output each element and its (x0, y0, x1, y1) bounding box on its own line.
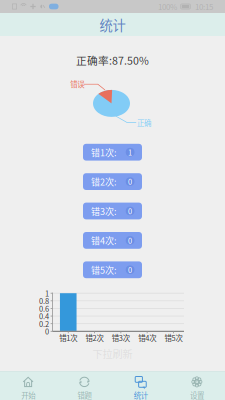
staticText: 错3次 (112, 332, 130, 343)
staticText: 开始 (21, 390, 35, 400)
staticText: 错2次: (91, 175, 117, 188)
staticText: 错1次 (59, 332, 77, 343)
staticText: 错4次 (138, 332, 156, 343)
staticText: 设置 (190, 390, 204, 400)
staticText: 10:15 (195, 1, 213, 12)
button[interactable]: 错4次: (83, 232, 142, 249)
staticText: 0 (128, 206, 132, 216)
staticText: 错3次: (91, 204, 117, 217)
button[interactable]: 统计 (112, 372, 169, 400)
staticText: 错4次: (91, 234, 117, 247)
staticText: 0 (128, 264, 132, 275)
staticText: 正确 (137, 117, 151, 128)
staticText: 0 (128, 176, 132, 187)
staticText: 统计 (99, 15, 125, 34)
staticText: 0 (45, 326, 49, 337)
staticText: 错题 (77, 390, 91, 400)
staticText: 下拉刷新 (92, 346, 132, 361)
button[interactable]: 错题 (56, 372, 112, 400)
staticText: 0 (128, 235, 132, 246)
staticText: 1 (45, 288, 49, 299)
staticText: 错误 (70, 79, 84, 89)
button[interactable]: 错1次: (83, 144, 142, 161)
staticText: 1 (128, 147, 132, 158)
staticText: 0.2 (39, 318, 49, 329)
staticText: 错1次: (91, 146, 117, 159)
staticText: 0.6 (39, 303, 49, 314)
button[interactable]: 错5次: (83, 261, 142, 278)
staticText: 正确率:87.50% (76, 52, 149, 68)
button[interactable]: 错3次: (83, 203, 142, 219)
staticText: 统计 (134, 390, 148, 400)
staticText: 0.8 (39, 295, 49, 306)
button[interactable]: 错2次: (83, 173, 142, 190)
button[interactable]: 设置 (169, 372, 225, 400)
staticText: 100% (158, 1, 177, 12)
staticText: 错5次 (164, 332, 182, 343)
staticText: 错5次: (91, 263, 117, 276)
staticText: 错2次 (85, 332, 103, 343)
button[interactable]: 开始 (0, 372, 56, 400)
staticText: 0.4 (39, 311, 49, 321)
